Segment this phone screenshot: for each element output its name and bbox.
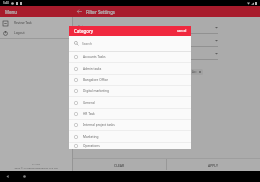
staticText: 2020 © All rights reserved by XYZ Ltd [0, 166, 72, 169]
staticText: Operations [83, 144, 100, 148]
button[interactable]: Category [78, 21, 218, 34]
button[interactable]: HR Task [69, 109, 191, 120]
button[interactable]: Menu [0, 6, 72, 17]
button[interactable]: Review Task [0, 18, 72, 28]
button[interactable]: Internal project tasks [69, 120, 191, 131]
button[interactable]: Bangalore Office [69, 75, 191, 86]
button[interactable]: cancel [173, 27, 191, 35]
button[interactable]: Operations [69, 143, 191, 149]
staticText: Menu [5, 9, 18, 15]
staticText: Bangalore Office [83, 78, 109, 82]
button[interactable]: Status [78, 47, 218, 60]
staticText: Acc [192, 70, 197, 74]
button[interactable]: APPLY [167, 159, 260, 171]
staticText: Accounts Tasks [83, 55, 106, 59]
staticText: Filter Settings [86, 9, 115, 15]
button[interactable]: Home [22, 174, 27, 179]
staticText: Status [78, 51, 88, 55]
button[interactable]: Back [76, 8, 83, 15]
button[interactable]: Marketing [69, 131, 191, 143]
staticText: Internal project tasks [83, 123, 115, 127]
staticText: Marketing [83, 135, 99, 139]
staticText: APPLY [208, 163, 219, 168]
button[interactable]: Acc [190, 69, 203, 75]
staticText: cancel [177, 29, 187, 33]
staticText: HR Task [83, 112, 95, 116]
button[interactable]: Digital marketing [69, 86, 191, 97]
staticText: Category [74, 28, 94, 34]
staticText: Search [82, 42, 93, 46]
staticText: Digital marketing [83, 89, 110, 93]
button[interactable]: Admin tasks [69, 63, 191, 75]
staticText: Review Task [14, 21, 32, 25]
button[interactable]: Logout [0, 28, 72, 38]
staticText: Category [78, 25, 92, 29]
button[interactable]: General [69, 97, 191, 109]
staticText: 5:40 [3, 1, 9, 5]
button[interactable]: Assigned To [78, 34, 218, 47]
staticText: V 1.4.0 [0, 162, 72, 165]
staticText: General [83, 101, 95, 105]
staticText: Logout [14, 31, 25, 35]
button[interactable]: Back [5, 174, 10, 179]
button[interactable]: CLEAR [73, 159, 166, 171]
staticText: Admin tasks [83, 67, 102, 71]
staticText: CLEAR [114, 163, 125, 168]
button[interactable]: Accounts Tasks [69, 52, 191, 63]
